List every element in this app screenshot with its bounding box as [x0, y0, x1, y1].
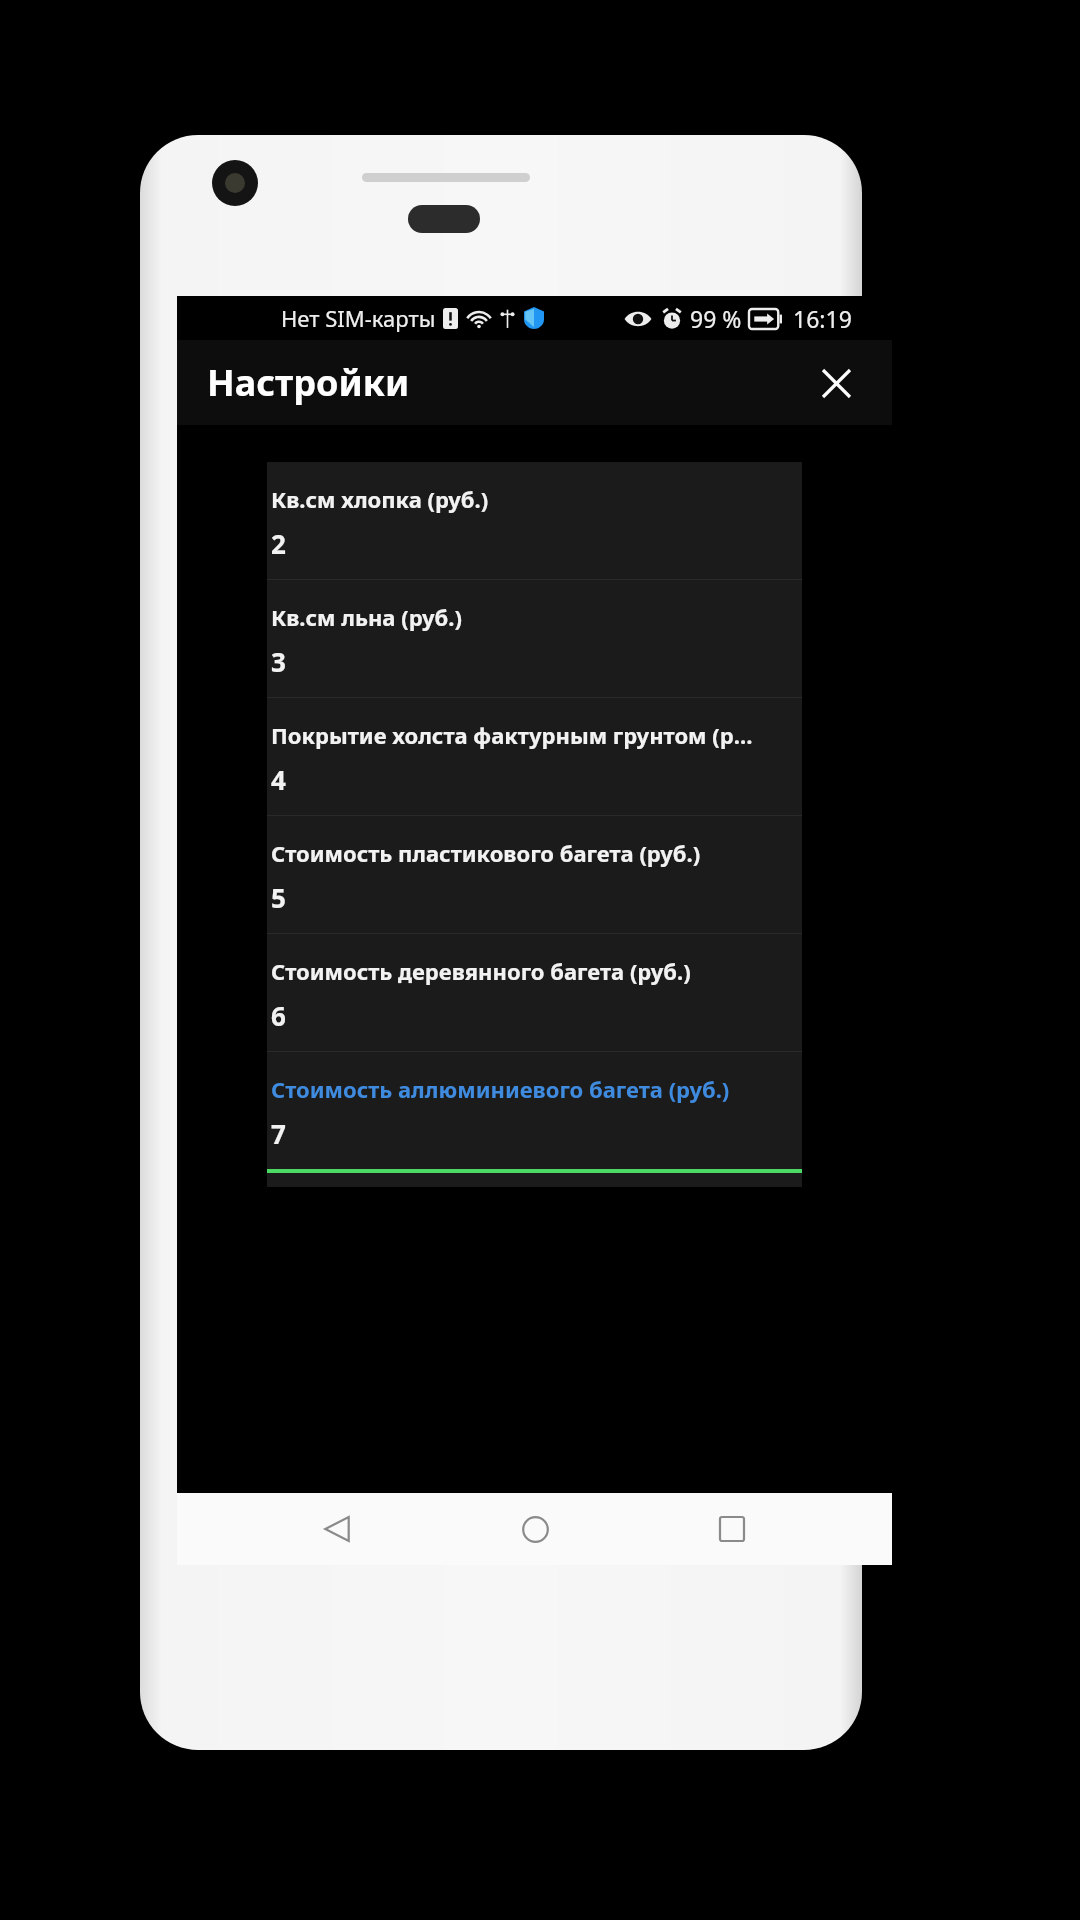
- staticText: Стоимость пластикового багета (руб.): [271, 838, 701, 868]
- button[interactable]: Кв.см хлопка (руб.): [267, 462, 802, 579]
- staticText: Настройки: [207, 358, 410, 407]
- button[interactable]: Обзор: [694, 1493, 770, 1565]
- button[interactable]: Настройки: [199, 352, 418, 413]
- staticText: Кв.см льна (руб.): [271, 602, 462, 632]
- staticText: Стоимость аллюминиевого багета (руб.): [271, 1074, 730, 1104]
- staticText: 2: [271, 526, 286, 561]
- staticText: Кв.см хлопка (руб.): [271, 484, 489, 514]
- staticText: 16:19: [793, 303, 852, 334]
- button[interactable]: Закрыть: [808, 355, 864, 411]
- button[interactable]: Стоимость пластикового багета (руб.): [267, 816, 802, 933]
- staticText: 6: [271, 998, 286, 1033]
- button[interactable]: Покрытие холста фактурным грунтом (р…: [267, 698, 802, 815]
- staticText: 5: [271, 880, 286, 915]
- staticText: 7: [271, 1116, 286, 1151]
- button[interactable]: Назад: [299, 1493, 375, 1565]
- button[interactable]: Стоимость аллюминиевого багета (руб.): [267, 1052, 802, 1169]
- staticText: Нет SIM-карты: [281, 303, 436, 333]
- button[interactable]: Главный экран: [497, 1493, 573, 1565]
- staticText: 3: [271, 644, 286, 679]
- staticText: 4: [271, 762, 286, 797]
- staticText: Покрытие холста фактурным грунтом (р…: [271, 720, 753, 750]
- staticText: 99 %: [690, 303, 742, 334]
- button[interactable]: Кв.см льна (руб.): [267, 580, 802, 697]
- button[interactable]: Стоимость деревянного багета (руб.): [267, 934, 802, 1051]
- staticText: Стоимость деревянного багета (руб.): [271, 956, 691, 986]
